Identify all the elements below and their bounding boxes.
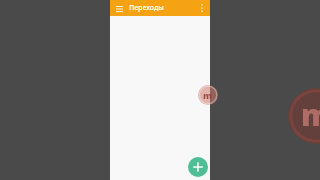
button[interactable]: Add — [188, 157, 208, 177]
staticText: m — [301, 94, 320, 135]
staticText: Переходы — [129, 3, 164, 13]
staticText: m — [203, 89, 213, 101]
button[interactable]: Open navigation drawer — [114, 3, 125, 14]
button[interactable]: More options — [196, 2, 208, 14]
